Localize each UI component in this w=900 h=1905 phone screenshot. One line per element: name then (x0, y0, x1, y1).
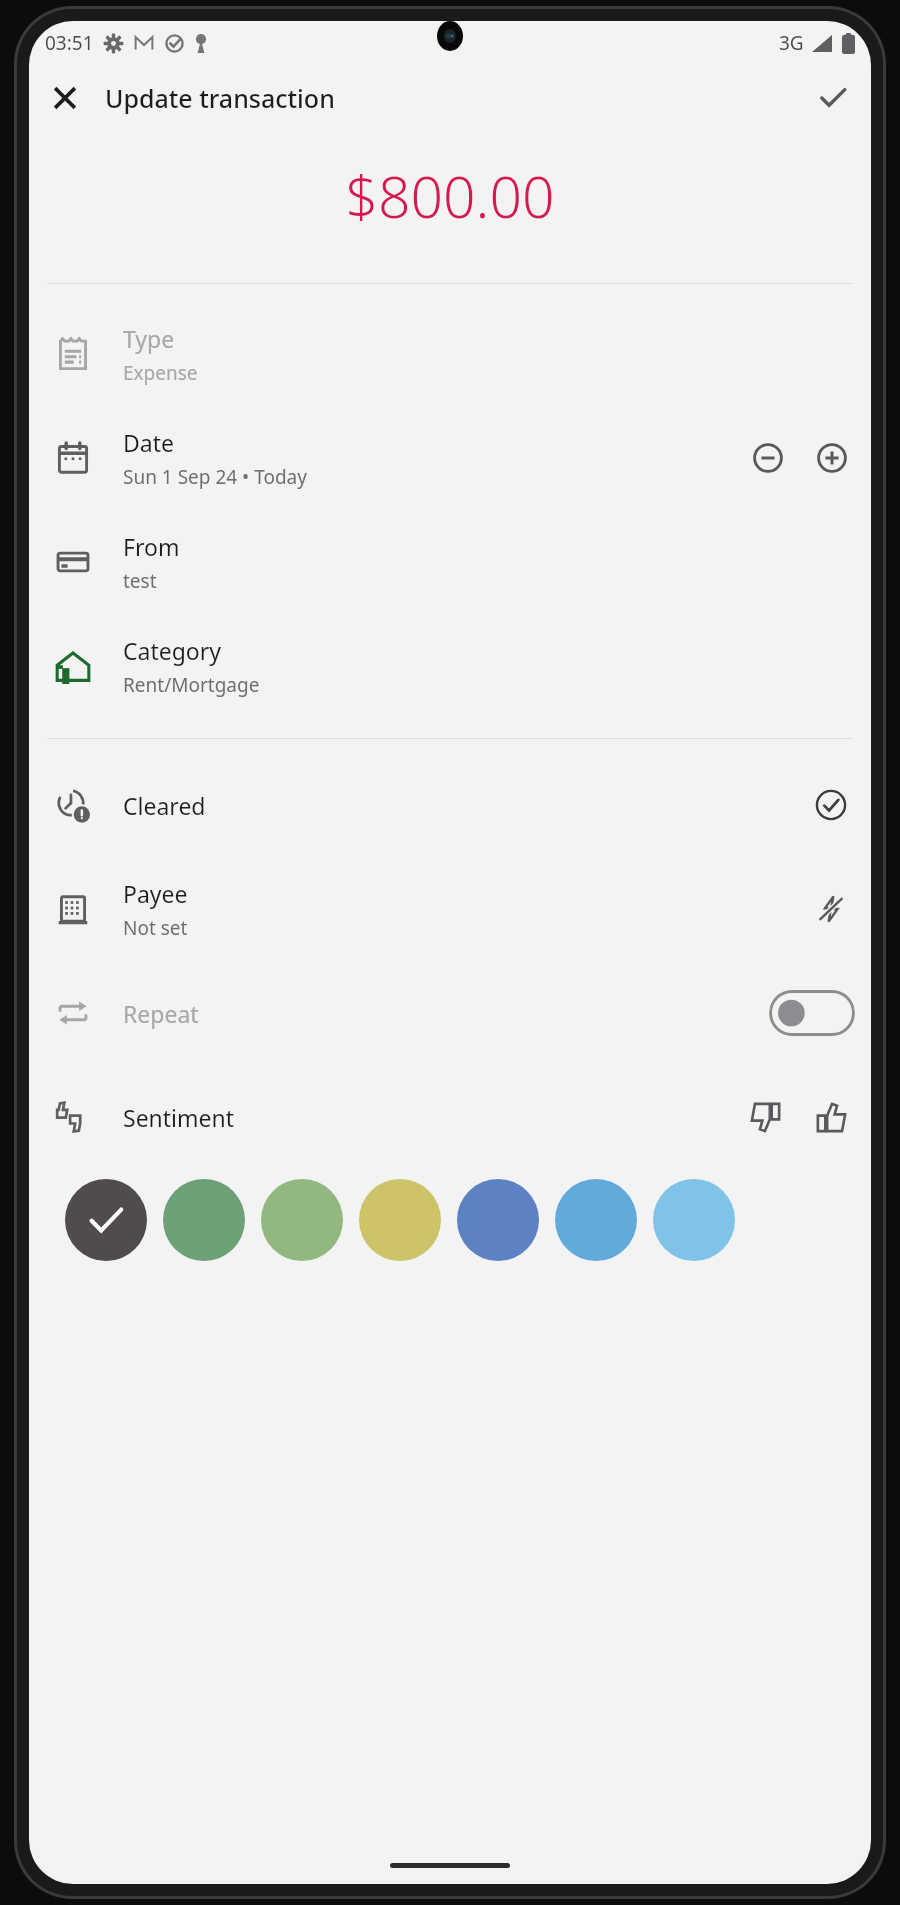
button[interactable]: Previous day (743, 433, 793, 483)
staticText: Category (123, 635, 222, 666)
button[interactable]: Cleared (29, 753, 871, 857)
button[interactable]: Cleared (805, 779, 857, 831)
button[interactable]: Colour option (163, 1179, 245, 1261)
staticText: Expense (123, 360, 198, 386)
button[interactable]: Repeat (29, 961, 871, 1065)
staticText: Rent/Mortgage (123, 672, 260, 698)
button[interactable]: Repeat toggle (769, 988, 855, 1038)
button[interactable]: From (29, 510, 871, 614)
button[interactable]: Colour option (457, 1179, 539, 1261)
staticText: Date (123, 427, 174, 458)
button[interactable]: Save (805, 70, 861, 126)
staticText: From (123, 531, 180, 562)
staticText: test (123, 568, 157, 594)
staticText: 3G (779, 30, 804, 56)
button[interactable]: Colour option (261, 1179, 343, 1261)
staticText: Type (123, 323, 175, 354)
button[interactable]: Payee (29, 857, 871, 961)
staticText: Sun 1 Sep 24 • Today (123, 464, 307, 490)
staticText: Repeat (123, 998, 199, 1029)
button[interactable]: Colour option (555, 1179, 637, 1261)
staticText: $800.00 (345, 157, 555, 235)
button[interactable]: Type (29, 302, 871, 406)
staticText: Cleared (123, 790, 206, 821)
button[interactable]: Colour option (653, 1179, 735, 1261)
staticText: Sentiment (123, 1102, 235, 1133)
button[interactable]: Positive sentiment (805, 1091, 857, 1143)
button[interactable]: Next day (807, 433, 857, 483)
staticText: Not set (123, 915, 188, 941)
button[interactable]: Date (29, 406, 871, 510)
staticText: Update transaction (105, 81, 335, 115)
button[interactable]: Payee auto-fill off (805, 883, 857, 935)
staticText: 03:51 (45, 30, 94, 56)
button[interactable]: Sentiment (29, 1065, 871, 1169)
button[interactable]: Negative sentiment (739, 1091, 791, 1143)
button[interactable]: Close (37, 70, 93, 126)
button[interactable]: Category (29, 614, 871, 718)
button[interactable]: Selected colour (65, 1179, 147, 1261)
button[interactable]: Colour option (359, 1179, 441, 1261)
staticText: Payee (123, 878, 188, 909)
